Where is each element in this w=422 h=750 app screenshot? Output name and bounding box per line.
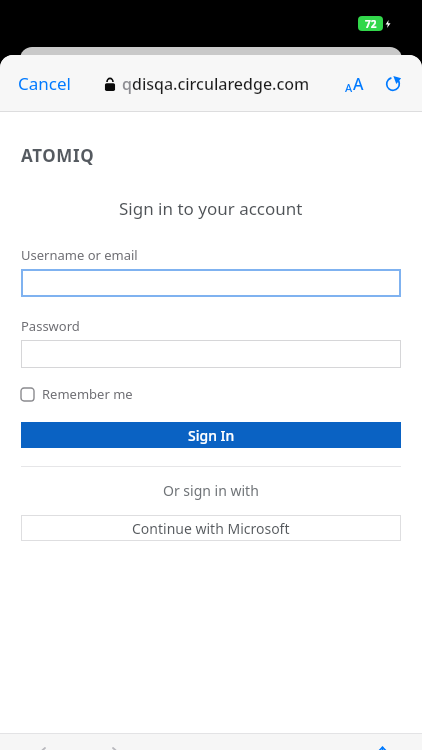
staticText: 72: [365, 17, 377, 31]
staticText: q: [122, 73, 132, 95]
staticText: Or sign in with: [163, 481, 259, 500]
staticText: disqa.circularedge.com: [132, 73, 310, 95]
button[interactable]: Forward: [105, 740, 132, 750]
button[interactable]: Remember me: [21, 383, 133, 405]
button[interactable]: Cancel: [16, 66, 73, 101]
button[interactable]: Reload: [380, 71, 406, 97]
staticText: Sign In: [188, 426, 235, 445]
button[interactable]: Back: [26, 740, 53, 750]
button[interactable]: Continue with Microsoft: [21, 515, 401, 541]
staticText: A: [345, 80, 353, 95]
staticText: Sign in to your account: [119, 197, 303, 220]
staticText: Username or email: [21, 246, 138, 264]
staticText: Remember me: [42, 385, 133, 403]
button[interactable]: [21, 269, 401, 297]
staticText: ATOMIQ: [21, 144, 95, 167]
staticText: A: [353, 73, 364, 95]
button[interactable]: [21, 340, 401, 368]
button[interactable]: Share: [367, 740, 398, 750]
staticText: Password: [21, 317, 80, 335]
button[interactable]: Text size: [341, 69, 368, 99]
button[interactable]: Sign In: [21, 422, 401, 448]
staticText: Cancel: [18, 72, 71, 95]
staticText: Continue with Microsoft: [132, 519, 290, 538]
